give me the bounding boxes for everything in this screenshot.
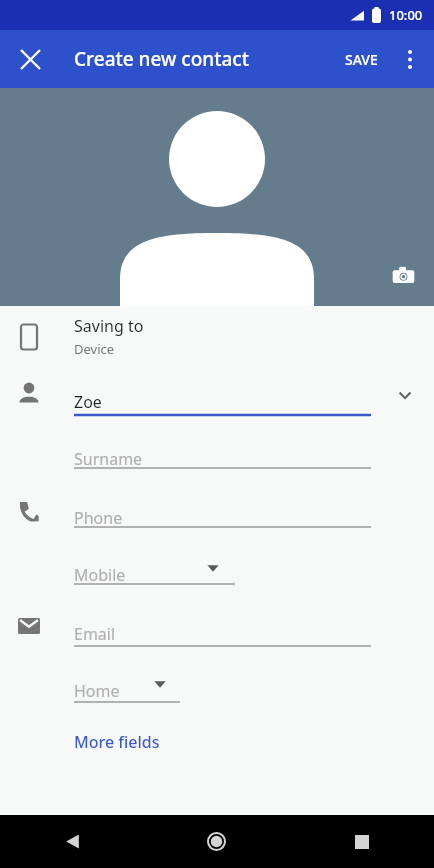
staticText: Device — [74, 340, 115, 358]
button[interactable]: Phone — [74, 502, 374, 534]
button[interactable]: Change photo — [384, 256, 422, 294]
staticText: Saving to — [74, 315, 144, 337]
button[interactable]: Close — [6, 35, 54, 83]
button[interactable]: Mobile — [74, 559, 194, 591]
button[interactable]: Back — [0, 815, 144, 868]
staticText: Mobile — [74, 564, 126, 586]
staticText: 10:00 — [389, 6, 423, 24]
staticText: Surname — [74, 448, 143, 470]
staticText: Zoe — [74, 391, 102, 413]
button[interactable]: Zoe — [74, 386, 374, 418]
staticText: Email — [74, 623, 116, 645]
staticText: More fields — [74, 731, 160, 753]
staticText: SAVE — [345, 50, 378, 69]
staticText: Create new contact — [74, 46, 249, 72]
button[interactable]: Email — [74, 618, 374, 650]
button[interactable]: More fields — [74, 731, 160, 753]
staticText: Phone — [74, 507, 123, 529]
button[interactable]: More options — [386, 35, 434, 83]
button[interactable]: SAVE — [337, 40, 386, 79]
button[interactable]: Add contact photo — [0, 88, 434, 306]
staticText: Home — [74, 680, 120, 702]
button[interactable]: Home — [74, 675, 154, 707]
button[interactable]: Home — [144, 815, 289, 868]
button[interactable]: Saving to — [74, 315, 324, 358]
button[interactable]: Surname — [74, 443, 374, 475]
button[interactable]: Recent apps — [289, 815, 434, 868]
